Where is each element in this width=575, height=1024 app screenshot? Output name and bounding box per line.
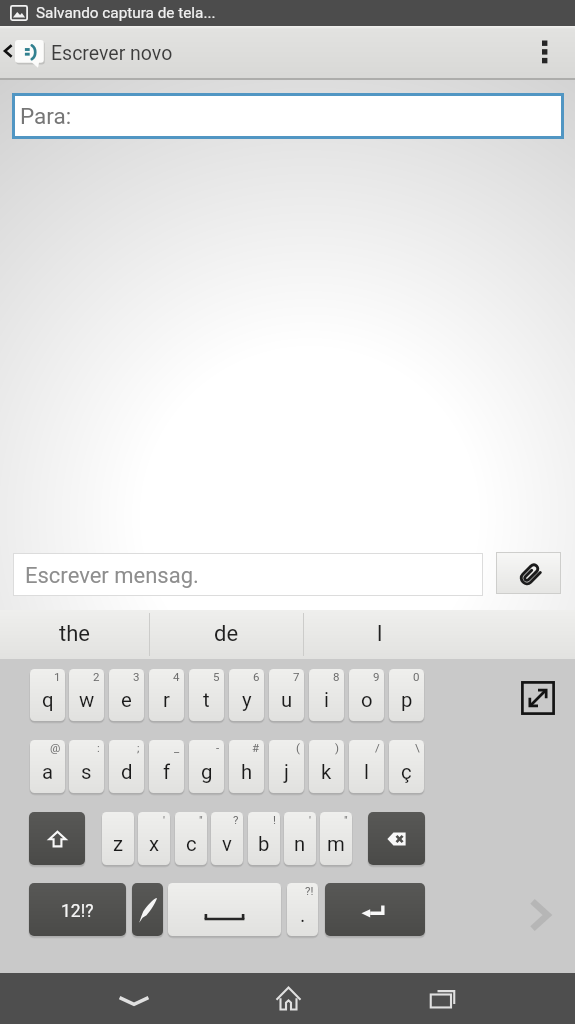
button[interactable]: Mais opções	[527, 26, 567, 78]
staticText: e	[121, 688, 132, 712]
staticText: s	[81, 760, 92, 784]
button[interactable]: @	[30, 740, 65, 793]
staticText: w	[79, 688, 95, 712]
button[interactable]: 9	[349, 669, 384, 721]
staticText: l	[377, 621, 383, 647]
button[interactable]: Voltar	[0, 26, 48, 78]
staticText: 8	[333, 670, 340, 683]
button[interactable]: :	[69, 740, 104, 793]
staticText: 2	[93, 670, 100, 683]
button[interactable]: 8	[309, 669, 344, 721]
button[interactable]: 3	[109, 669, 144, 721]
staticText: d	[121, 760, 133, 784]
button[interactable]: Próximo	[517, 893, 561, 937]
button[interactable]: (	[269, 740, 304, 793]
staticText: @	[50, 741, 61, 754]
button[interactable]: Números e símbolos	[29, 883, 126, 936]
button[interactable]: 0	[389, 669, 424, 721]
button[interactable]: ?	[211, 812, 243, 865]
staticText: o	[361, 688, 373, 712]
button[interactable]: \	[389, 740, 424, 793]
button[interactable]: Apagar	[368, 812, 425, 865]
staticText: t	[203, 688, 210, 712]
staticText: "	[199, 813, 203, 826]
button[interactable]: -	[189, 740, 224, 793]
staticText: ?	[233, 813, 239, 826]
staticText: 4	[173, 670, 180, 683]
staticText: '	[163, 813, 166, 826]
button[interactable]: 1	[30, 669, 65, 721]
button[interactable]: '	[284, 812, 316, 865]
button[interactable]: Shift	[29, 812, 85, 865]
button[interactable]: ;	[109, 740, 144, 793]
staticText: r	[163, 688, 170, 712]
staticText: 0	[413, 670, 420, 683]
button[interactable]: "	[175, 812, 207, 865]
staticText: a	[42, 760, 54, 784]
button[interactable]: )	[309, 740, 344, 793]
staticText: g	[201, 760, 213, 784]
button[interactable]: 2	[69, 669, 104, 721]
button[interactable]: Redimensionar teclado	[516, 678, 558, 720]
button[interactable]: Espaço	[168, 883, 281, 936]
button[interactable]: z	[102, 812, 134, 865]
button[interactable]: 4	[149, 669, 184, 721]
staticText: n	[294, 832, 306, 856]
button[interactable]: Enter	[325, 883, 425, 936]
staticText: /	[375, 741, 380, 754]
button[interactable]: Escrita manual	[132, 883, 163, 936]
button[interactable]: "	[320, 812, 352, 865]
staticText: (	[296, 741, 300, 754]
staticText: 5	[213, 670, 220, 683]
staticText: c	[186, 832, 197, 856]
staticText: de	[214, 621, 239, 647]
button[interactable]: '	[138, 812, 170, 865]
staticText: :	[97, 741, 100, 754]
staticText: q	[42, 688, 54, 712]
button[interactable]: 7	[269, 669, 304, 721]
staticText: _	[174, 741, 180, 754]
staticText: Escrever novo	[51, 42, 173, 65]
button[interactable]: Início	[249, 973, 327, 1024]
staticText: Salvando captura de tela...	[36, 4, 216, 22]
button[interactable]: _	[149, 740, 184, 793]
staticText: f	[163, 760, 171, 784]
button[interactable]: de	[150, 610, 303, 659]
staticText: m	[327, 832, 345, 856]
staticText: \	[415, 741, 420, 754]
staticText: .	[300, 903, 306, 927]
button[interactable]: Para:	[12, 93, 564, 139]
staticText: '	[309, 813, 312, 826]
button[interactable]: the	[0, 610, 149, 659]
button[interactable]: Escrever mensag.	[13, 553, 483, 596]
staticText: -	[216, 741, 220, 754]
staticText: k	[321, 760, 332, 784]
button[interactable]: 6	[229, 669, 264, 721]
staticText: 9	[373, 670, 380, 683]
staticText: 1	[54, 670, 61, 683]
staticText: z	[113, 832, 124, 856]
button[interactable]: l	[304, 610, 455, 659]
staticText: the	[59, 621, 90, 647]
staticText: u	[281, 688, 293, 712]
staticText: x	[149, 832, 160, 856]
staticText: )	[335, 741, 340, 754]
staticText: Para:	[20, 103, 72, 129]
button[interactable]: 5	[189, 669, 224, 721]
staticText: v	[222, 832, 232, 856]
button[interactable]: Anexar	[496, 552, 561, 594]
button[interactable]: ?!	[287, 883, 318, 936]
staticText: !	[273, 813, 276, 826]
staticText: ?!	[305, 884, 314, 897]
staticText: "	[344, 813, 348, 826]
button[interactable]: /	[349, 740, 384, 793]
staticText: y	[242, 688, 252, 712]
staticText: p	[401, 688, 413, 712]
button[interactable]: Fechar teclado	[95, 973, 173, 1024]
staticText: h	[241, 760, 253, 784]
staticText: 12!?	[61, 901, 94, 922]
button[interactable]: !	[248, 812, 280, 865]
button[interactable]: Recentes	[403, 973, 481, 1024]
button[interactable]: #	[229, 740, 264, 793]
staticText: 3	[133, 670, 140, 683]
